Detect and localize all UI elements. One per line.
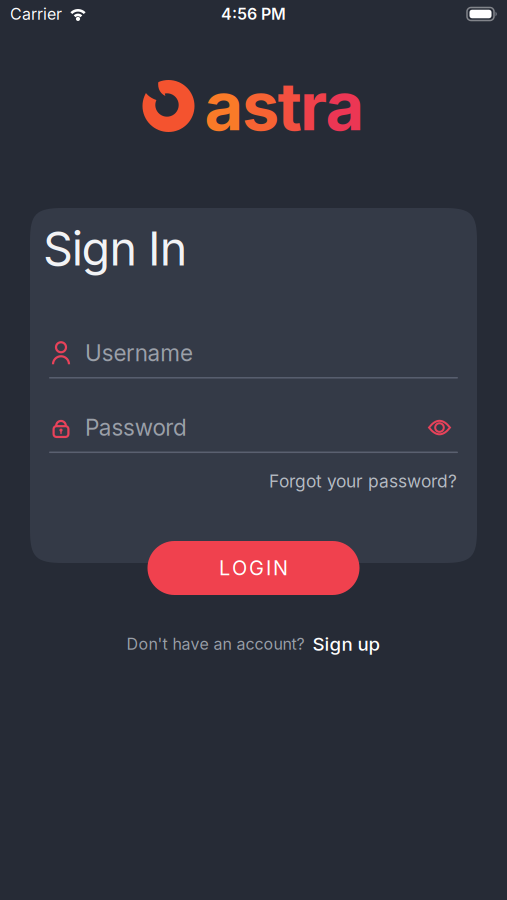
- staticText: s: [242, 67, 279, 145]
- staticText: a: [204, 67, 243, 145]
- staticText: LOGIN: [219, 556, 288, 580]
- staticText: r: [300, 67, 327, 145]
- button[interactable]: Forgot your password?: [269, 471, 457, 491]
- button[interactable]: Show password: [428, 420, 458, 436]
- button[interactable]: Username: [49, 338, 458, 379]
- staticText: Sign In: [43, 221, 188, 276]
- staticText: Forgot your password?: [269, 471, 457, 491]
- staticText: Sign up: [312, 633, 380, 655]
- button[interactable]: Password: [49, 413, 458, 453]
- staticText: Username: [85, 340, 193, 366]
- staticText: Password: [85, 414, 187, 441]
- staticText: Carrier: [10, 5, 62, 23]
- staticText: Don't have an account?: [126, 635, 304, 653]
- button[interactable]: Sign up: [312, 633, 380, 655]
- staticText: a: [325, 67, 364, 145]
- button[interactable]: LOGIN: [147, 541, 359, 595]
- staticText: 4:56 PM: [221, 5, 286, 23]
- staticText: t: [277, 67, 301, 145]
